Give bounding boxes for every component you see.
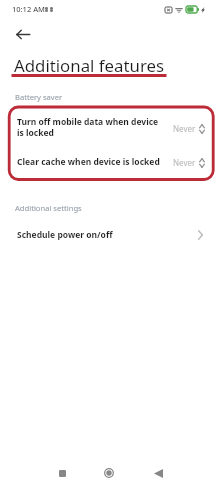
button[interactable]: Home: [97, 458, 121, 488]
button[interactable]: Back: [146, 458, 170, 488]
staticText: Battery saver: [15, 92, 63, 102]
button[interactable]: Clear cache when device is locked: [0, 152, 220, 172]
staticText: Clear cache when device is locked: [17, 156, 160, 168]
staticText: 10:12 AM: [12, 4, 45, 14]
button[interactable]: Back: [11, 22, 35, 46]
button[interactable]: Recents: [50, 458, 74, 488]
staticText: Schedule power on/off: [17, 229, 113, 241]
staticText: Never: [173, 123, 196, 134]
staticText: Never: [173, 157, 196, 168]
staticText: Turn off mobile data when device is lock…: [17, 116, 165, 138]
staticText: Additional settings: [15, 203, 82, 213]
staticText: Additional features: [14, 54, 165, 77]
button[interactable]: Schedule power on/off: [0, 225, 220, 245]
button[interactable]: Turn off mobile data when device is lock…: [0, 113, 220, 143]
